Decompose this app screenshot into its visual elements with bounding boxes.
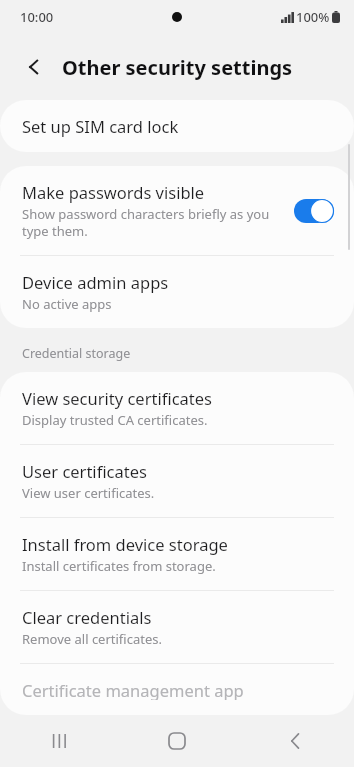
staticText: No active apps [22,295,112,313]
button[interactable]: Set up SIM card lock [0,100,354,152]
button[interactable]: Back [20,53,48,81]
staticText: View user certificates. [22,484,155,502]
staticText: 100% [296,8,330,26]
button[interactable]: Recent apps [33,715,85,767]
button[interactable]: Make passwords visible toggle [294,199,334,223]
button[interactable]: Device admin apps [0,256,354,328]
staticText: Display trusted CA certificates. [22,411,208,429]
button[interactable]: Home [151,715,203,767]
staticText: Certificate management app [22,679,244,700]
staticText: Other security settings [62,54,293,81]
button[interactable]: Install from device storage [0,518,354,591]
staticText: Install certificates from storage. [22,557,216,575]
staticText: Install from device storage [22,533,228,555]
staticText: Credential storage [22,345,131,362]
staticText: Clear credentials [22,606,152,628]
button[interactable]: User certificates [0,445,354,518]
button[interactable]: Certificate management app [0,664,354,715]
button[interactable]: Make passwords visible [0,166,354,256]
button[interactable]: Back [269,715,321,767]
staticText: Device admin apps [22,271,169,293]
staticText: View security certificates [22,387,212,409]
staticText: User certificates [22,460,147,482]
staticText: Remove all certificates. [22,630,162,648]
button[interactable]: Clear credentials [0,591,354,664]
staticText: Set up SIM card lock [22,115,179,137]
staticText: 10:00 [20,8,54,26]
button[interactable]: View security certificates [0,372,354,445]
staticText: Show password characters briefly as you … [22,205,282,240]
staticText: Make passwords visible [22,181,205,203]
